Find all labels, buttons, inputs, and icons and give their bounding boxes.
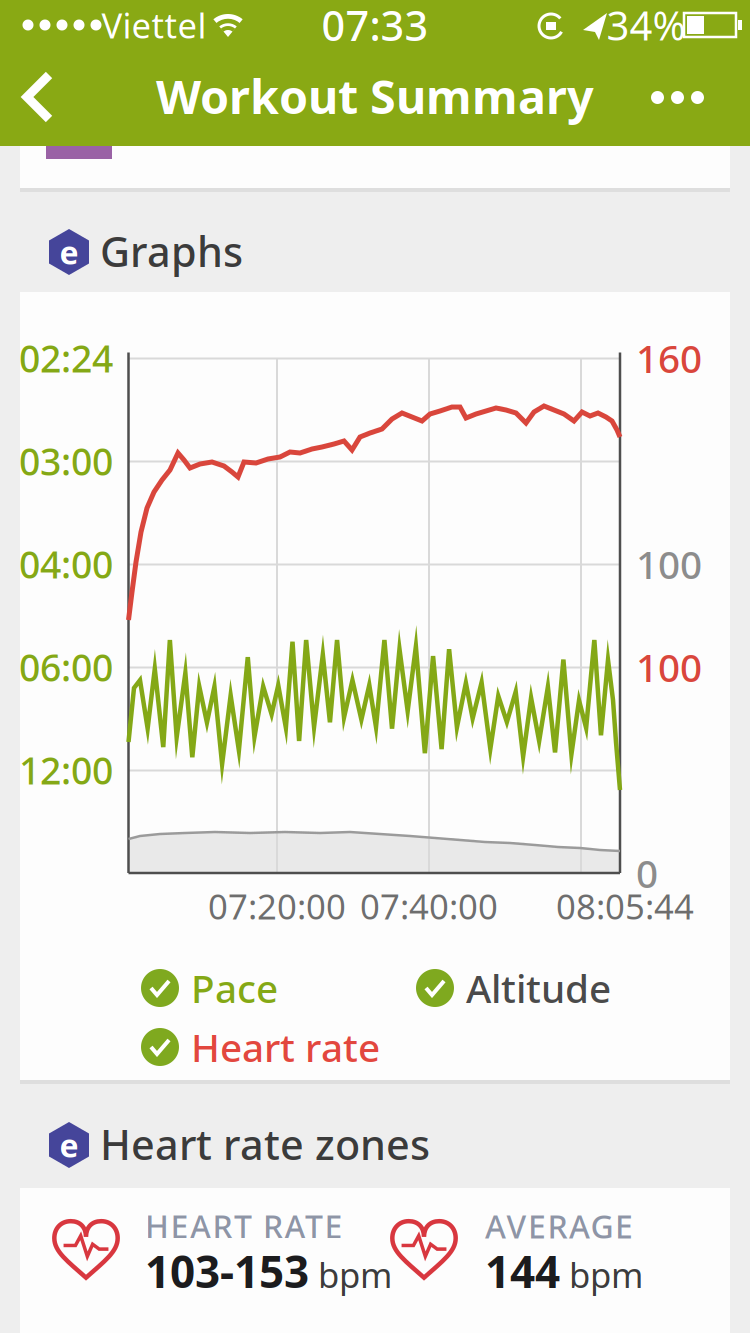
- staticText: Pace: [191, 962, 278, 1014]
- staticText: Altitude: [466, 962, 611, 1014]
- staticText: Viettel: [101, 2, 206, 48]
- button[interactable]: More: [639, 55, 717, 139]
- staticText: HEART RATE: [145, 1205, 342, 1247]
- staticText: 12:00: [19, 745, 113, 795]
- staticText: 02:24: [19, 333, 113, 383]
- staticText: 03:00: [19, 436, 113, 486]
- staticText: 103-153: [145, 1242, 309, 1300]
- staticText: Heart rate: [191, 1021, 380, 1073]
- button[interactable]: Heart rate: [141, 1024, 401, 1070]
- staticText: 07:20:00: [208, 883, 346, 929]
- staticText: 100: [636, 641, 702, 693]
- staticText: Heart rate zones: [100, 1117, 430, 1171]
- staticText: 08:05:44: [556, 883, 694, 929]
- staticText: 07:40:00: [360, 883, 498, 929]
- staticText: e: [59, 231, 78, 273]
- staticText: 07:33: [321, 0, 428, 52]
- staticText: bpm: [318, 1252, 392, 1298]
- staticText: 0: [636, 847, 658, 899]
- button[interactable]: Pace: [141, 965, 401, 1011]
- staticText: 34%: [606, 0, 685, 51]
- staticText: 06:00: [19, 642, 113, 692]
- staticText: 144: [485, 1242, 560, 1300]
- staticText: AVERAGE: [485, 1205, 633, 1247]
- staticText: 160: [636, 332, 702, 384]
- staticText: 100: [636, 538, 702, 590]
- staticText: Graphs: [100, 224, 243, 278]
- staticText: Workout Summary: [156, 65, 594, 127]
- staticText: 04:00: [19, 539, 113, 589]
- staticText: e: [59, 1124, 78, 1166]
- staticText: bpm: [569, 1252, 643, 1298]
- button[interactable]: Altitude: [416, 965, 676, 1011]
- button[interactable]: Back: [7, 55, 73, 139]
